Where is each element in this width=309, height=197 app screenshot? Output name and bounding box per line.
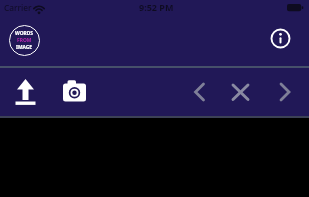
button[interactable] bbox=[270, 28, 291, 49]
button[interactable] bbox=[273, 79, 296, 105]
button[interactable]: WORDS bbox=[9, 25, 40, 56]
button[interactable] bbox=[188, 79, 211, 105]
staticText: Carrier bbox=[4, 2, 32, 13]
button[interactable] bbox=[227, 77, 254, 107]
staticText: 9:52 PM bbox=[139, 1, 174, 13]
button[interactable] bbox=[10, 74, 41, 110]
button[interactable] bbox=[59, 76, 90, 106]
staticText: WORDS bbox=[15, 30, 34, 37]
staticText: IMAGE bbox=[16, 44, 33, 51]
staticText: FROM bbox=[17, 37, 32, 44]
